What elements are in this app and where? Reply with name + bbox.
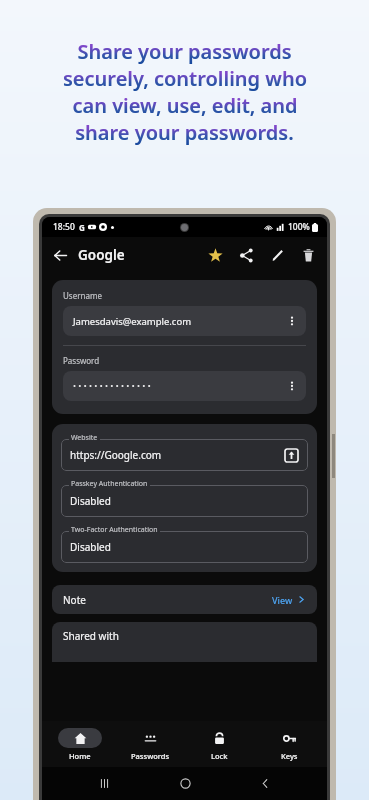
staticText: share your passwords. (75, 119, 294, 146)
staticText: Share your passwords (77, 38, 292, 65)
button[interactable]: Keys (258, 721, 320, 767)
button[interactable]: More options (281, 310, 303, 332)
button[interactable]: Passwords (119, 721, 181, 767)
button[interactable]: Home (167, 767, 203, 800)
staticText: Shared with (63, 629, 119, 643)
button[interactable]: Lock (188, 721, 250, 767)
staticText: Google (78, 246, 125, 264)
staticText: View (272, 594, 293, 606)
staticText: can view, use, edit, and (72, 92, 298, 119)
button[interactable]: Open website (282, 446, 300, 464)
button[interactable]: Shared with (52, 622, 317, 662)
button[interactable]: More options (63, 371, 306, 401)
staticText: 100% (288, 221, 310, 233)
staticText: Passkey Authentication (71, 479, 148, 489)
button[interactable]: Back (47, 242, 73, 268)
staticText: Home (69, 751, 91, 761)
button[interactable]: Home (49, 721, 111, 767)
staticText: G (79, 222, 85, 233)
staticText: Keys (281, 751, 298, 761)
staticText: Username (63, 290, 102, 301)
staticText: Disabled (70, 540, 111, 554)
button[interactable]: Recent apps (86, 767, 122, 800)
button[interactable]: More options (281, 375, 303, 397)
button[interactable]: Disabled (61, 531, 308, 563)
staticText: Two-Factor Authentication (71, 525, 158, 535)
staticText: Website (71, 433, 98, 443)
staticText: Note (63, 593, 86, 607)
staticText: securely, controlling who (63, 65, 307, 92)
staticText: Disabled (70, 494, 111, 508)
staticText: Jamesdavis@example.com (73, 315, 192, 328)
staticText: Password (63, 355, 100, 366)
button[interactable]: https://Google.com (61, 439, 308, 471)
button[interactable]: Edit (264, 242, 290, 268)
staticText: https://Google.com (70, 448, 162, 462)
button[interactable]: Delete (295, 242, 321, 268)
button[interactable]: Disabled (61, 485, 308, 517)
staticText: 18:50 (53, 221, 75, 233)
button[interactable]: Share (233, 242, 259, 268)
staticText: Lock (211, 751, 228, 761)
staticText: Passwords (131, 751, 170, 761)
button[interactable]: Back (247, 767, 283, 800)
button[interactable]: Note (52, 585, 317, 614)
button[interactable]: Jamesdavis@example.com (63, 306, 306, 336)
button[interactable]: Favorite (202, 242, 228, 268)
